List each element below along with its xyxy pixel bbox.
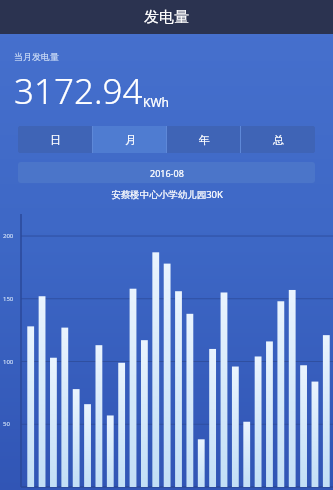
staticText: 150 xyxy=(3,295,14,303)
staticText: 发电量 xyxy=(144,8,189,27)
button[interactable]: 月 xyxy=(93,126,167,153)
staticText: 月 xyxy=(125,133,136,147)
button[interactable]: 2016-08 xyxy=(18,162,315,183)
staticText: 2016-08 xyxy=(150,167,184,179)
staticText: 50 xyxy=(3,420,10,428)
button[interactable]: 年 xyxy=(167,126,241,153)
staticText: 安蔡楼中心小学幼儿园30K xyxy=(111,188,223,201)
staticText: 当月发电量 xyxy=(14,51,59,62)
staticText: 年 xyxy=(199,133,210,147)
button[interactable]: 总 xyxy=(241,126,315,153)
staticText: 日 xyxy=(50,133,61,147)
staticText: 200 xyxy=(3,232,14,240)
staticText: 100 xyxy=(3,358,14,366)
staticText: KWh xyxy=(143,94,170,110)
staticText: 3172.94 xyxy=(14,67,143,115)
button[interactable]: 日 xyxy=(18,126,93,153)
staticText: 总 xyxy=(273,133,284,147)
